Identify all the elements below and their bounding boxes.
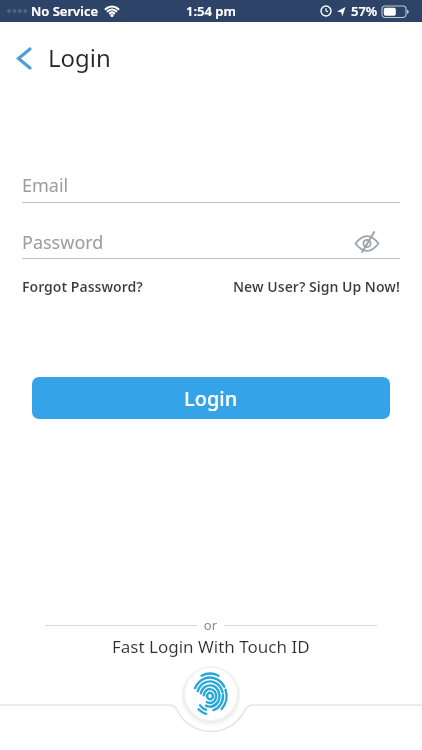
button[interactable]: Login bbox=[32, 377, 390, 419]
staticText: Email bbox=[22, 173, 69, 198]
button[interactable] bbox=[355, 233, 379, 252]
button[interactable]: Forgot Password? bbox=[22, 277, 143, 296]
button[interactable] bbox=[17, 46, 41, 70]
button[interactable]: Password bbox=[22, 230, 400, 259]
staticText: No Service bbox=[31, 2, 99, 20]
staticText: Login bbox=[48, 41, 111, 74]
staticText: Fast Login With Touch ID bbox=[112, 635, 310, 658]
button[interactable]: Email bbox=[22, 173, 400, 203]
staticText: Login bbox=[184, 385, 238, 412]
staticText: 57% bbox=[351, 2, 378, 20]
button[interactable]: New User? Sign Up Now! bbox=[233, 277, 400, 296]
staticText: Password bbox=[22, 230, 355, 255]
staticText: 1:54 pm bbox=[186, 2, 236, 20]
staticText: or bbox=[197, 616, 224, 634]
